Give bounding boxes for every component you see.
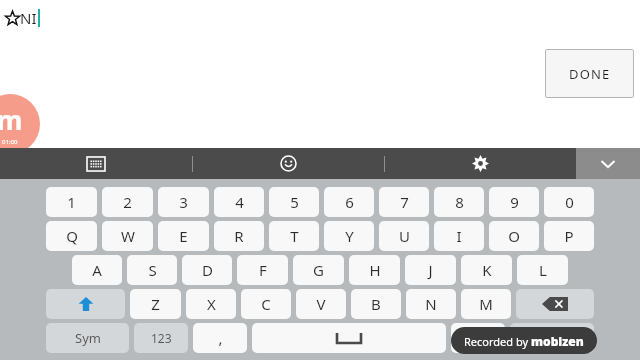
staticText: E xyxy=(179,226,188,246)
staticText: Recorded by xyxy=(464,334,531,349)
button[interactable]: 9 xyxy=(489,187,539,217)
button[interactable]: Hide keyboard xyxy=(576,148,640,179)
staticText: Y xyxy=(345,226,354,246)
button[interactable]: 4 xyxy=(214,187,264,217)
staticText: P xyxy=(564,226,574,246)
staticText: 7 xyxy=(400,192,409,212)
button[interactable]: 7 xyxy=(379,187,429,217)
button[interactable]: Sym xyxy=(46,323,129,353)
staticText: W xyxy=(121,226,135,246)
staticText: I xyxy=(456,226,462,246)
button[interactable]: 0 xyxy=(544,187,594,217)
staticText: N xyxy=(425,294,437,314)
button[interactable]: F xyxy=(237,255,288,285)
button[interactable]: Shift xyxy=(46,289,125,319)
staticText: 6 xyxy=(345,192,354,212)
staticText: mobizen xyxy=(531,333,584,349)
staticText: X xyxy=(207,294,216,314)
button[interactable]: S xyxy=(127,255,177,285)
button[interactable]: O xyxy=(489,221,539,251)
staticText: U xyxy=(399,226,410,246)
button[interactable]: B xyxy=(351,289,401,319)
button[interactable]: Settings xyxy=(385,148,576,179)
staticText: Sym xyxy=(75,329,101,347)
staticText: NI xyxy=(20,8,37,28)
button[interactable]: Space xyxy=(252,323,446,353)
staticText: 8 xyxy=(455,192,464,212)
staticText: . xyxy=(476,328,481,348)
staticText: Q xyxy=(66,226,78,246)
staticText: R xyxy=(234,226,244,246)
staticText: 0 xyxy=(565,192,574,212)
button[interactable]: Z xyxy=(130,289,181,319)
staticText: C xyxy=(261,294,271,314)
staticText: T xyxy=(290,226,299,246)
button[interactable]: J xyxy=(405,255,456,285)
staticText: V xyxy=(316,294,326,314)
button[interactable]: K xyxy=(461,255,512,285)
staticText: m xyxy=(0,102,23,137)
staticText: L xyxy=(539,260,547,280)
staticText: J xyxy=(428,260,433,280)
button[interactable]: C xyxy=(241,289,291,319)
button[interactable]: G xyxy=(293,255,344,285)
button[interactable]: 5 xyxy=(269,187,319,217)
staticText: 123 xyxy=(151,330,172,346)
button[interactable]: 1 xyxy=(46,187,97,217)
button[interactable]: M xyxy=(461,289,511,319)
staticText: G xyxy=(313,260,324,280)
button[interactable]: T xyxy=(269,221,319,251)
staticText: 2 xyxy=(123,192,132,212)
button[interactable]: I xyxy=(434,221,484,251)
staticText: Z xyxy=(151,294,160,314)
staticText: 3 xyxy=(179,192,188,212)
button[interactable]: D xyxy=(182,255,232,285)
button[interactable]: 2 xyxy=(102,187,153,217)
button[interactable]: Backspace xyxy=(516,289,594,319)
staticText: 5 xyxy=(290,192,299,212)
button[interactable]: Enter xyxy=(510,323,594,353)
button[interactable]: R xyxy=(214,221,264,251)
staticText: DONE xyxy=(569,65,611,83)
staticText: 4 xyxy=(235,192,244,212)
staticText: O xyxy=(508,226,520,246)
button[interactable]: W xyxy=(102,221,153,251)
staticText: F xyxy=(259,260,267,280)
staticText: S xyxy=(148,260,157,280)
button[interactable]: L xyxy=(517,255,568,285)
staticText: 01:00 xyxy=(2,138,18,146)
staticText: D xyxy=(202,260,213,280)
staticText: H xyxy=(369,260,381,280)
staticText: M xyxy=(479,294,493,314)
staticText: B xyxy=(371,294,381,314)
button[interactable]: A xyxy=(72,255,122,285)
button[interactable]: U xyxy=(379,221,429,251)
button[interactable]: 6 xyxy=(324,187,374,217)
button[interactable]: Q xyxy=(46,221,97,251)
button[interactable]: 8 xyxy=(434,187,484,217)
staticText: 1 xyxy=(67,192,76,212)
staticText: , xyxy=(218,328,223,348)
staticText: A xyxy=(92,260,102,280)
button[interactable]: E xyxy=(158,221,209,251)
button[interactable]: V xyxy=(296,289,346,319)
button[interactable]: DONE xyxy=(545,49,634,98)
button[interactable]: N xyxy=(406,289,456,319)
button[interactable]: 123 xyxy=(134,323,188,353)
button[interactable]: H xyxy=(349,255,400,285)
button[interactable]: X xyxy=(186,289,236,319)
button[interactable]: , xyxy=(193,323,247,353)
button[interactable]: Keyboard xyxy=(0,148,192,179)
button[interactable]: P xyxy=(544,221,594,251)
button[interactable]: Y xyxy=(324,221,374,251)
staticText: 9 xyxy=(510,192,519,212)
button[interactable]: . xyxy=(451,323,505,353)
button[interactable]: 3 xyxy=(158,187,209,217)
button[interactable]: Emoji xyxy=(193,148,384,179)
staticText: K xyxy=(482,260,492,280)
